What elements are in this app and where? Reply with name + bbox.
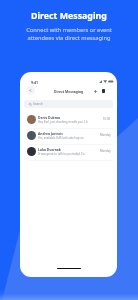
staticText: Luka Dvornak — [38, 147, 61, 151]
staticText: Andrea Jurincic — [38, 131, 63, 135]
staticText: Direct Messaging — [31, 10, 107, 22]
button[interactable]: Back — [26, 86, 35, 95]
staticText: Monday — [100, 149, 111, 153]
staticText: Denis Dubrau — [38, 115, 61, 119]
staticText: Connect with members or event attendees … — [26, 26, 112, 41]
staticText: 9:41 — [31, 80, 39, 85]
staticText: Monday — [100, 133, 111, 137]
staticText: Hey Karl, just checking in with you. I h — [38, 120, 88, 124]
button[interactable]: New message — [91, 87, 100, 96]
button[interactable]: Search — [24, 100, 113, 108]
staticText: 10:30 — [103, 117, 111, 121]
button[interactable]: Denis Dubrau — [20, 111, 117, 127]
staticText: Yes, available 8:45 let's catch up so — [38, 136, 84, 140]
staticText: It was great to talk to you today! Co — [38, 152, 85, 156]
button[interactable]: Profile — [99, 86, 108, 95]
button[interactable]: Andrea Jurincic — [20, 127, 117, 143]
staticText: Search — [33, 102, 44, 106]
button[interactable]: Luka Dvornak — [20, 143, 117, 159]
staticText: Direct Messaging — [54, 89, 84, 94]
